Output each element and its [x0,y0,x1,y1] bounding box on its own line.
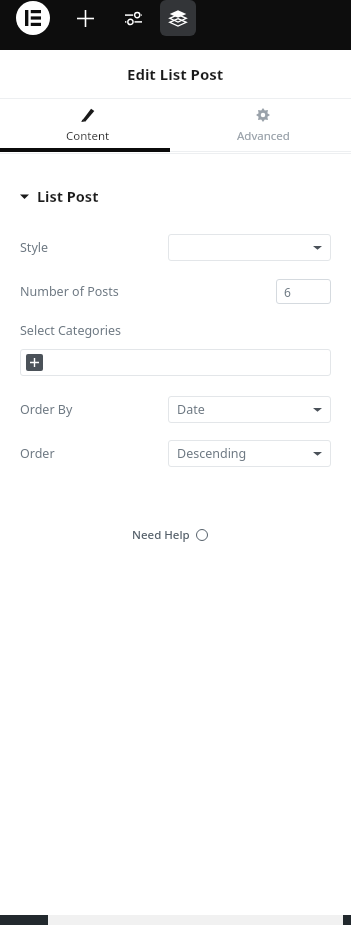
staticText: Date [177,401,205,418]
button[interactable]: Date [168,396,331,423]
staticText: Advanced [237,128,290,144]
staticText: Descending [177,445,247,462]
staticText: Content [66,128,110,144]
button[interactable]: 6 [276,279,331,304]
button[interactable] [168,234,331,261]
staticText: Need Help [132,527,190,543]
button[interactable]: Select categories [20,349,331,376]
button[interactable]: Content [0,99,175,152]
staticText: Order [20,445,168,462]
staticText: Select Categories [20,322,122,339]
button[interactable]: Advanced [175,99,351,152]
staticText: 6 [284,284,291,300]
staticText: Style [20,239,168,256]
button[interactable]: Elementor menu [16,1,50,35]
staticText: Edit List Post [127,64,224,84]
button[interactable]: Navigator layers [160,0,196,36]
button[interactable]: List Post [0,182,351,210]
button[interactable]: Descending [168,440,331,467]
button[interactable]: Need Help [0,527,351,543]
button[interactable]: Add element [68,1,102,35]
button[interactable]: Settings [116,1,150,35]
staticText: Number of Posts [20,283,276,300]
button[interactable]: Add category [26,354,43,371]
staticText: List Post [37,186,99,206]
staticText: Order By [20,401,168,418]
